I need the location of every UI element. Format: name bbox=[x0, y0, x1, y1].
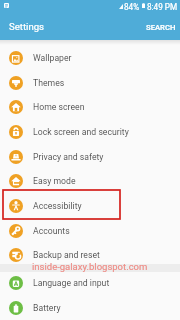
button[interactable]: Language and input bbox=[0, 270, 180, 295]
staticText: Easy mode bbox=[33, 176, 76, 186]
staticText: Accessibility bbox=[33, 201, 82, 211]
staticText: Battery bbox=[33, 303, 61, 313]
staticText: inside-galaxy.blogspot.com bbox=[32, 261, 148, 272]
staticText: Home screen bbox=[33, 102, 85, 112]
button[interactable]: Backup and reset bbox=[0, 242, 180, 267]
button[interactable]: Accounts bbox=[0, 218, 180, 243]
button[interactable]: SEARCH bbox=[141, 19, 180, 36]
staticText: Lock screen and security bbox=[33, 127, 129, 137]
staticText: Wallpaper bbox=[33, 53, 72, 63]
staticText: Backup and reset bbox=[33, 250, 100, 260]
button[interactable]: Privacy and safety bbox=[0, 144, 180, 169]
button[interactable]: Accessibility bbox=[0, 193, 180, 218]
staticText: 84% bbox=[124, 2, 140, 12]
button[interactable]: Home screen bbox=[0, 94, 180, 119]
staticText: Accounts bbox=[33, 226, 70, 236]
staticText: Settings bbox=[9, 21, 45, 32]
staticText: 8:49 PM bbox=[147, 2, 178, 12]
button[interactable]: Themes bbox=[0, 70, 180, 95]
button[interactable]: Battery bbox=[0, 295, 180, 320]
staticText: Privacy and safety bbox=[33, 152, 104, 162]
staticText: Themes bbox=[33, 78, 65, 88]
staticText: Language and input bbox=[33, 278, 110, 288]
button[interactable]: Lock screen and security bbox=[0, 119, 180, 144]
button[interactable]: Wallpaper bbox=[0, 45, 180, 70]
staticText: SEARCH bbox=[146, 23, 176, 32]
button[interactable]: Easy mode bbox=[0, 168, 180, 193]
